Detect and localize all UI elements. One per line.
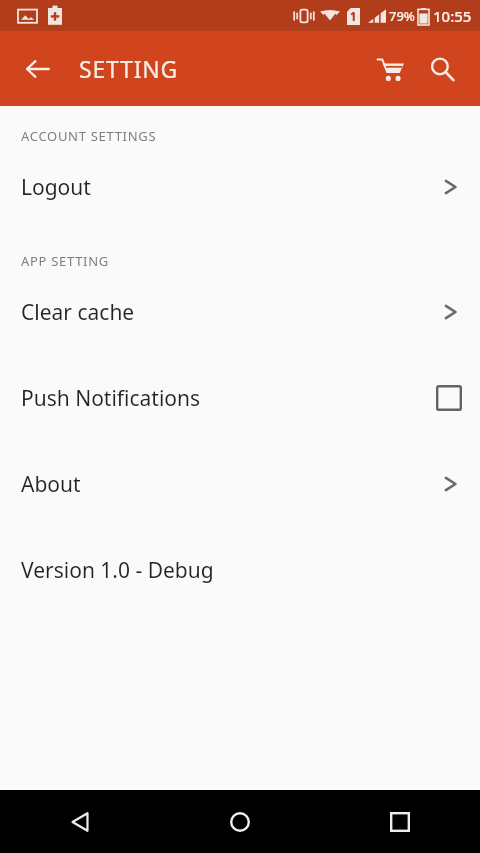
button[interactable]: Cart (364, 43, 416, 95)
staticText: Logout (21, 173, 443, 202)
staticText: About (21, 470, 443, 499)
button[interactable]: About (0, 468, 480, 500)
staticText: Push Notifications (21, 384, 433, 413)
button[interactable]: Logout (0, 171, 480, 203)
button[interactable]: Recent apps (320, 790, 480, 853)
staticText: 10:55 (433, 6, 472, 26)
staticText: Clear cache (21, 298, 443, 327)
staticText: ACCOUNT SETTINGS (21, 127, 157, 145)
button[interactable]: Clear cache (0, 296, 480, 328)
button[interactable]: Back (0, 790, 160, 853)
staticText: Version 1.0 - Debug (21, 556, 459, 585)
button[interactable]: Push Notifications (0, 382, 480, 414)
button[interactable]: Search (416, 43, 468, 95)
staticText: APP SETTING (21, 252, 109, 270)
staticText: SETTING (79, 53, 179, 84)
button[interactable]: Back (10, 41, 66, 97)
button[interactable]: Home (160, 790, 320, 853)
staticText: 79% (389, 7, 415, 25)
